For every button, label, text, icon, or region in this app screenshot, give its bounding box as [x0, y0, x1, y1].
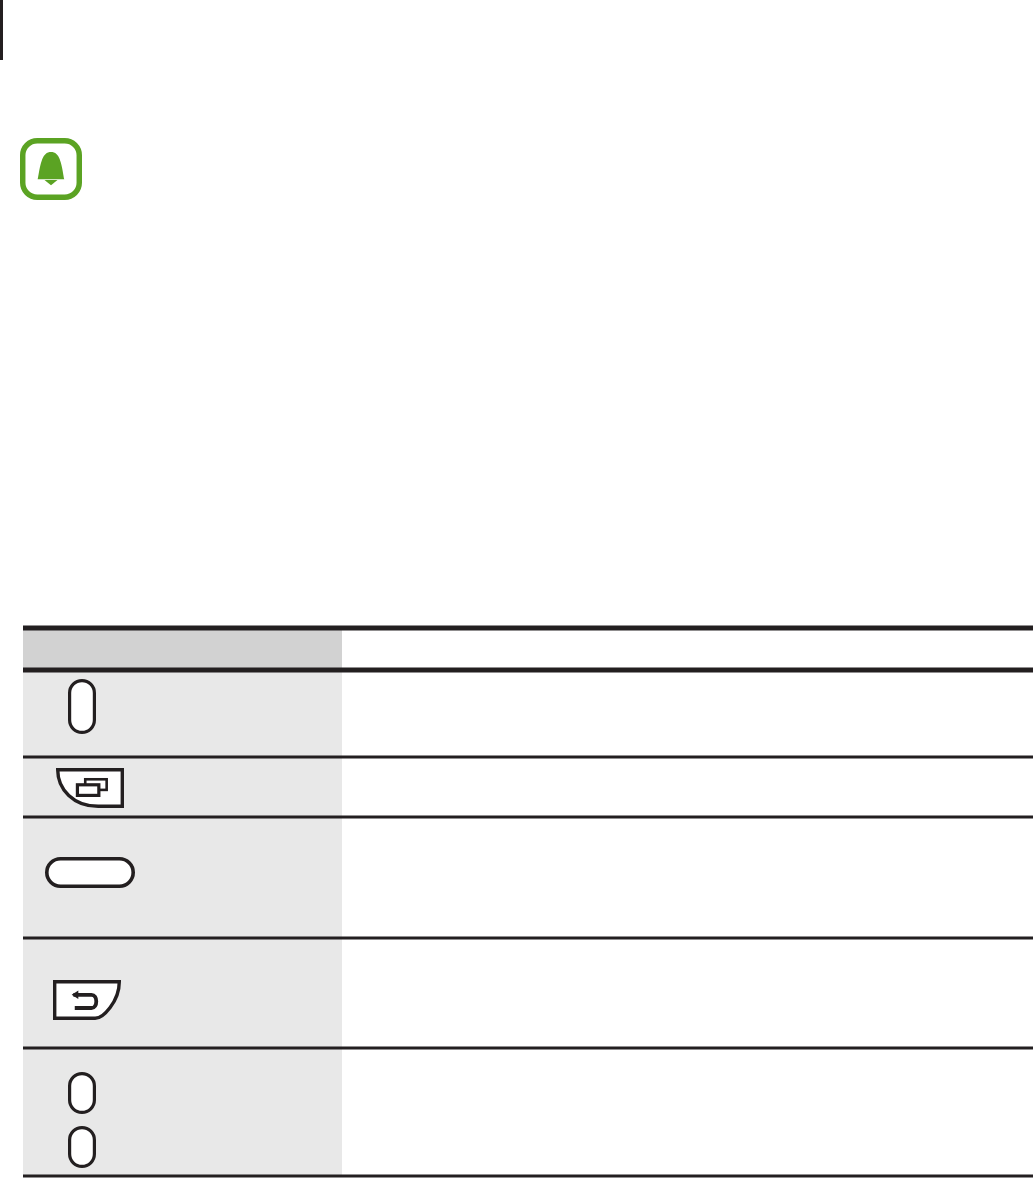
button[interactable]: Home key — [45, 857, 135, 888]
button[interactable]: Volume key — [68, 679, 96, 734]
button[interactable]: Recents key — [56, 768, 124, 808]
button[interactable]: Back key — [53, 980, 121, 1020]
button[interactable]: Volume keys — [68, 1072, 96, 1168]
button[interactable]: Note — [20, 138, 82, 200]
